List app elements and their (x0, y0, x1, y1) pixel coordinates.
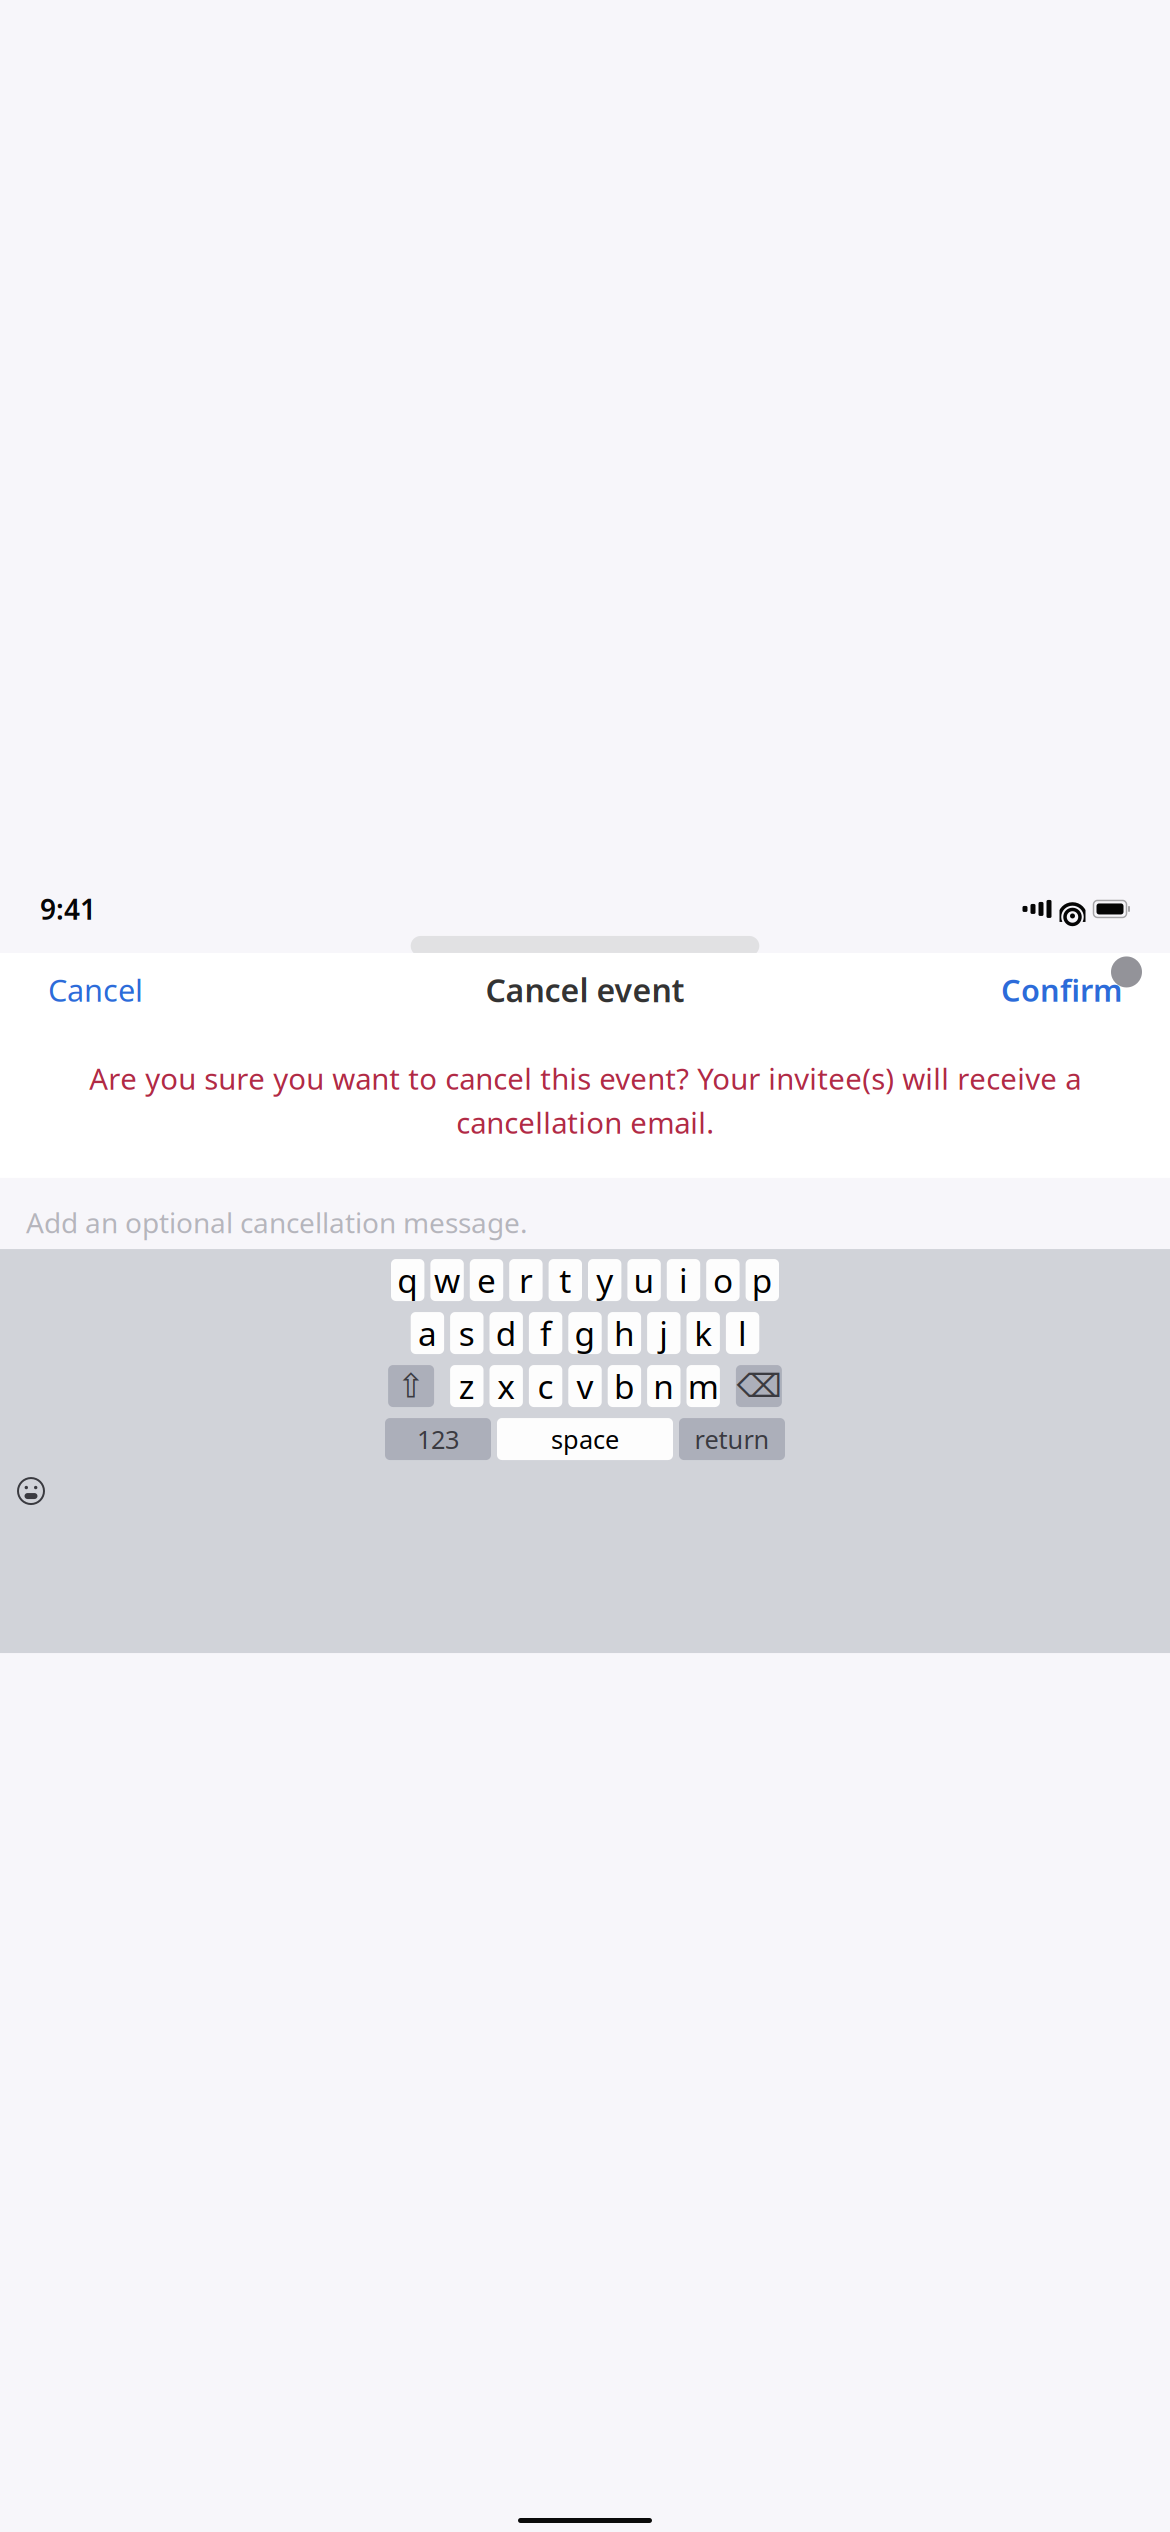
staticText: n (653, 1364, 674, 1408)
staticText: return (694, 1422, 769, 1456)
staticText: Confirm (1001, 970, 1122, 1010)
staticText: y (596, 1258, 613, 1302)
button[interactable]: j (647, 1312, 680, 1354)
button[interactable]: g (568, 1312, 602, 1354)
button[interactable]: Shift (388, 1365, 434, 1407)
staticText: j (659, 1311, 668, 1355)
button[interactable]: t (549, 1259, 582, 1301)
button[interactable]: w (430, 1259, 464, 1301)
staticText: i (679, 1258, 688, 1302)
staticText: Add an optional cancellation message. (26, 1204, 528, 1241)
staticText: Cancel (48, 970, 143, 1010)
staticText: t (559, 1258, 571, 1302)
staticText: 123 (417, 1422, 459, 1456)
button[interactable]: Cancel (42, 960, 149, 1020)
button[interactable]: p (746, 1259, 779, 1301)
button[interactable]: y (588, 1259, 621, 1301)
staticText: Cancel event (485, 969, 684, 1011)
button[interactable]: Emoji keyboard (0, 1476, 46, 1506)
staticText: d (496, 1311, 517, 1355)
button[interactable]: Delete (736, 1365, 782, 1407)
button[interactable]: d (489, 1312, 523, 1354)
button[interactable]: c (529, 1365, 562, 1407)
button[interactable]: r (509, 1259, 543, 1301)
staticText: k (694, 1311, 712, 1355)
button[interactable]: h (608, 1312, 641, 1354)
staticText: m (688, 1364, 719, 1408)
staticText: Are you sure you want to cancel this eve… (89, 1059, 1081, 1142)
button[interactable]: space (497, 1418, 673, 1460)
staticText: q (397, 1258, 418, 1302)
staticText: space (551, 1422, 619, 1456)
staticText: u (634, 1258, 655, 1302)
staticText: x (497, 1364, 515, 1408)
staticText: o (713, 1258, 733, 1302)
staticText: e (477, 1258, 496, 1302)
staticText: c (538, 1364, 554, 1408)
button[interactable]: f (529, 1312, 562, 1354)
staticText: b (614, 1364, 635, 1408)
staticText: r (519, 1258, 533, 1302)
button[interactable]: z (450, 1365, 483, 1407)
staticText: l (738, 1311, 747, 1355)
button[interactable]: b (608, 1365, 641, 1407)
staticText: g (574, 1311, 595, 1355)
staticText: p (752, 1258, 773, 1302)
staticText: v (576, 1364, 593, 1408)
button[interactable]: n (647, 1365, 680, 1407)
button[interactable]: return (679, 1418, 785, 1460)
button[interactable]: l (726, 1312, 759, 1354)
staticText: 9:41 (40, 890, 96, 928)
staticText: a (418, 1311, 437, 1355)
staticText: s (459, 1311, 475, 1355)
staticText: f (540, 1311, 551, 1355)
button[interactable]: i (667, 1259, 700, 1301)
staticText: ⇧ (397, 1367, 425, 1405)
staticText: z (459, 1364, 475, 1408)
staticText: h (614, 1311, 635, 1355)
button[interactable]: a (411, 1312, 444, 1354)
button[interactable]: e (470, 1259, 503, 1301)
button[interactable]: k (686, 1312, 720, 1354)
button[interactable]: 123 (385, 1418, 491, 1460)
button[interactable]: o (706, 1259, 740, 1301)
button[interactable]: x (489, 1365, 523, 1407)
button[interactable]: v (568, 1365, 602, 1407)
staticText: ⌫ (736, 1368, 781, 1404)
button[interactable]: s (450, 1312, 483, 1354)
button[interactable]: u (627, 1259, 661, 1301)
button[interactable]: q (391, 1259, 424, 1301)
button[interactable]: m (686, 1365, 720, 1407)
button[interactable]: Confirm (995, 960, 1128, 1020)
staticText: w (434, 1258, 460, 1302)
